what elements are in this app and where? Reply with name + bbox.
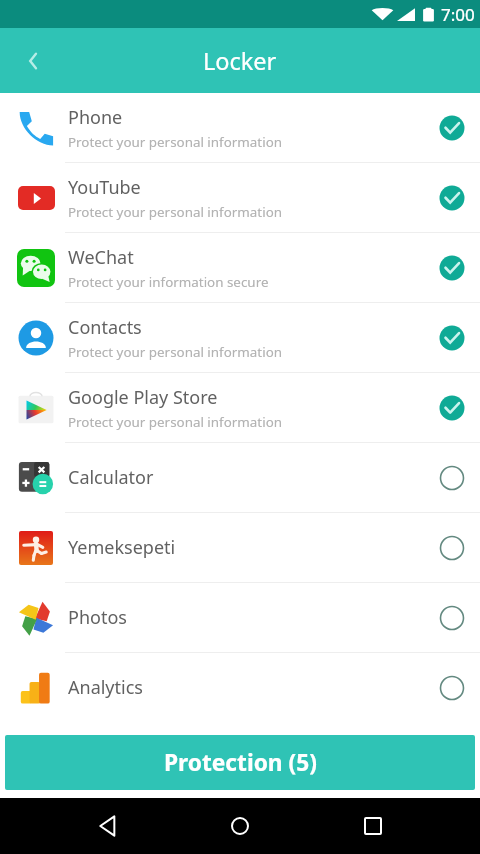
button[interactable]: WeChat [0, 233, 480, 302]
staticText: Protection (5) [164, 747, 317, 778]
staticText: Protect your personal information [68, 413, 283, 431]
staticText: WeChat [68, 245, 134, 270]
staticText: Analytics [68, 675, 143, 700]
staticText: Protect your personal information [68, 343, 283, 361]
staticText: 7:00 [441, 3, 475, 26]
button[interactable]: Protection (5) [5, 735, 475, 790]
staticText: Google Play Store [68, 385, 218, 410]
staticText: Phone [68, 105, 123, 130]
staticText: Yemeksepeti [68, 535, 176, 560]
button[interactable]: Recents [351, 804, 395, 848]
button[interactable]: YouTube [0, 163, 480, 232]
staticText: Locker [203, 45, 277, 77]
staticText: Photos [68, 605, 127, 630]
button[interactable]: Google Play Store [0, 373, 480, 442]
staticText: YouTube [68, 175, 141, 200]
staticText: Protect your information secure [68, 273, 269, 291]
staticText: Contacts [68, 315, 142, 340]
staticText: Protect your personal information [68, 203, 283, 221]
staticText: Protect your personal information [68, 133, 283, 151]
button[interactable]: Home [218, 804, 262, 848]
button[interactable]: Phone [0, 93, 480, 162]
button[interactable]: Yemeksepeti [0, 513, 480, 582]
button[interactable]: Photos [0, 583, 480, 652]
button[interactable]: Contacts [0, 303, 480, 372]
button[interactable]: Calculator [0, 443, 480, 512]
button[interactable]: Analytics [0, 653, 480, 722]
button[interactable]: Back [85, 804, 129, 848]
staticText: Calculator [68, 465, 154, 490]
button[interactable]: Back [8, 37, 56, 85]
